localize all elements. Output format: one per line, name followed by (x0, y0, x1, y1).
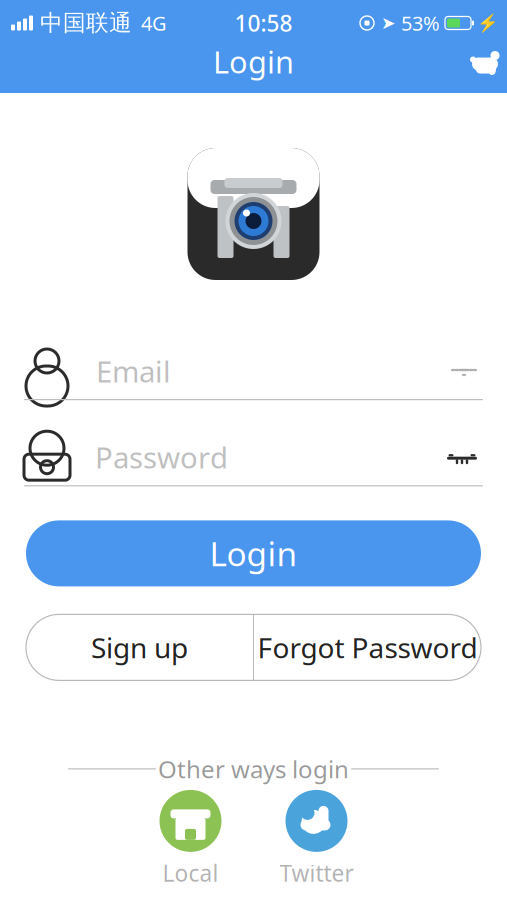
button[interactable]: Region (463, 43, 507, 79)
staticText: Email (96, 351, 171, 390)
button[interactable]: Show saved accounts (447, 359, 507, 383)
staticText: Sign up (91, 629, 188, 666)
button[interactable]: Sign up (26, 614, 253, 680)
staticText: Password (95, 438, 228, 477)
staticText: Local (162, 858, 218, 888)
staticText: 中国联通 (40, 9, 132, 37)
staticText: Other ways login (158, 753, 349, 785)
staticText: Twitter (279, 858, 353, 888)
staticText: Login (209, 531, 297, 576)
button[interactable]: Show password (439, 445, 507, 469)
staticText: 53% (401, 10, 440, 36)
staticText: Forgot Password (257, 629, 477, 666)
staticText: 10:58 (234, 8, 292, 38)
staticText: ➤ (381, 13, 396, 33)
staticText: 4G (141, 10, 167, 36)
button[interactable]: Forgot Password (254, 614, 481, 680)
button[interactable]: Login (26, 520, 481, 586)
staticText: ⚡ (477, 13, 499, 33)
button[interactable]: Twitter (261, 790, 371, 888)
button[interactable]: Local (135, 790, 245, 888)
staticText: Login (213, 41, 294, 82)
